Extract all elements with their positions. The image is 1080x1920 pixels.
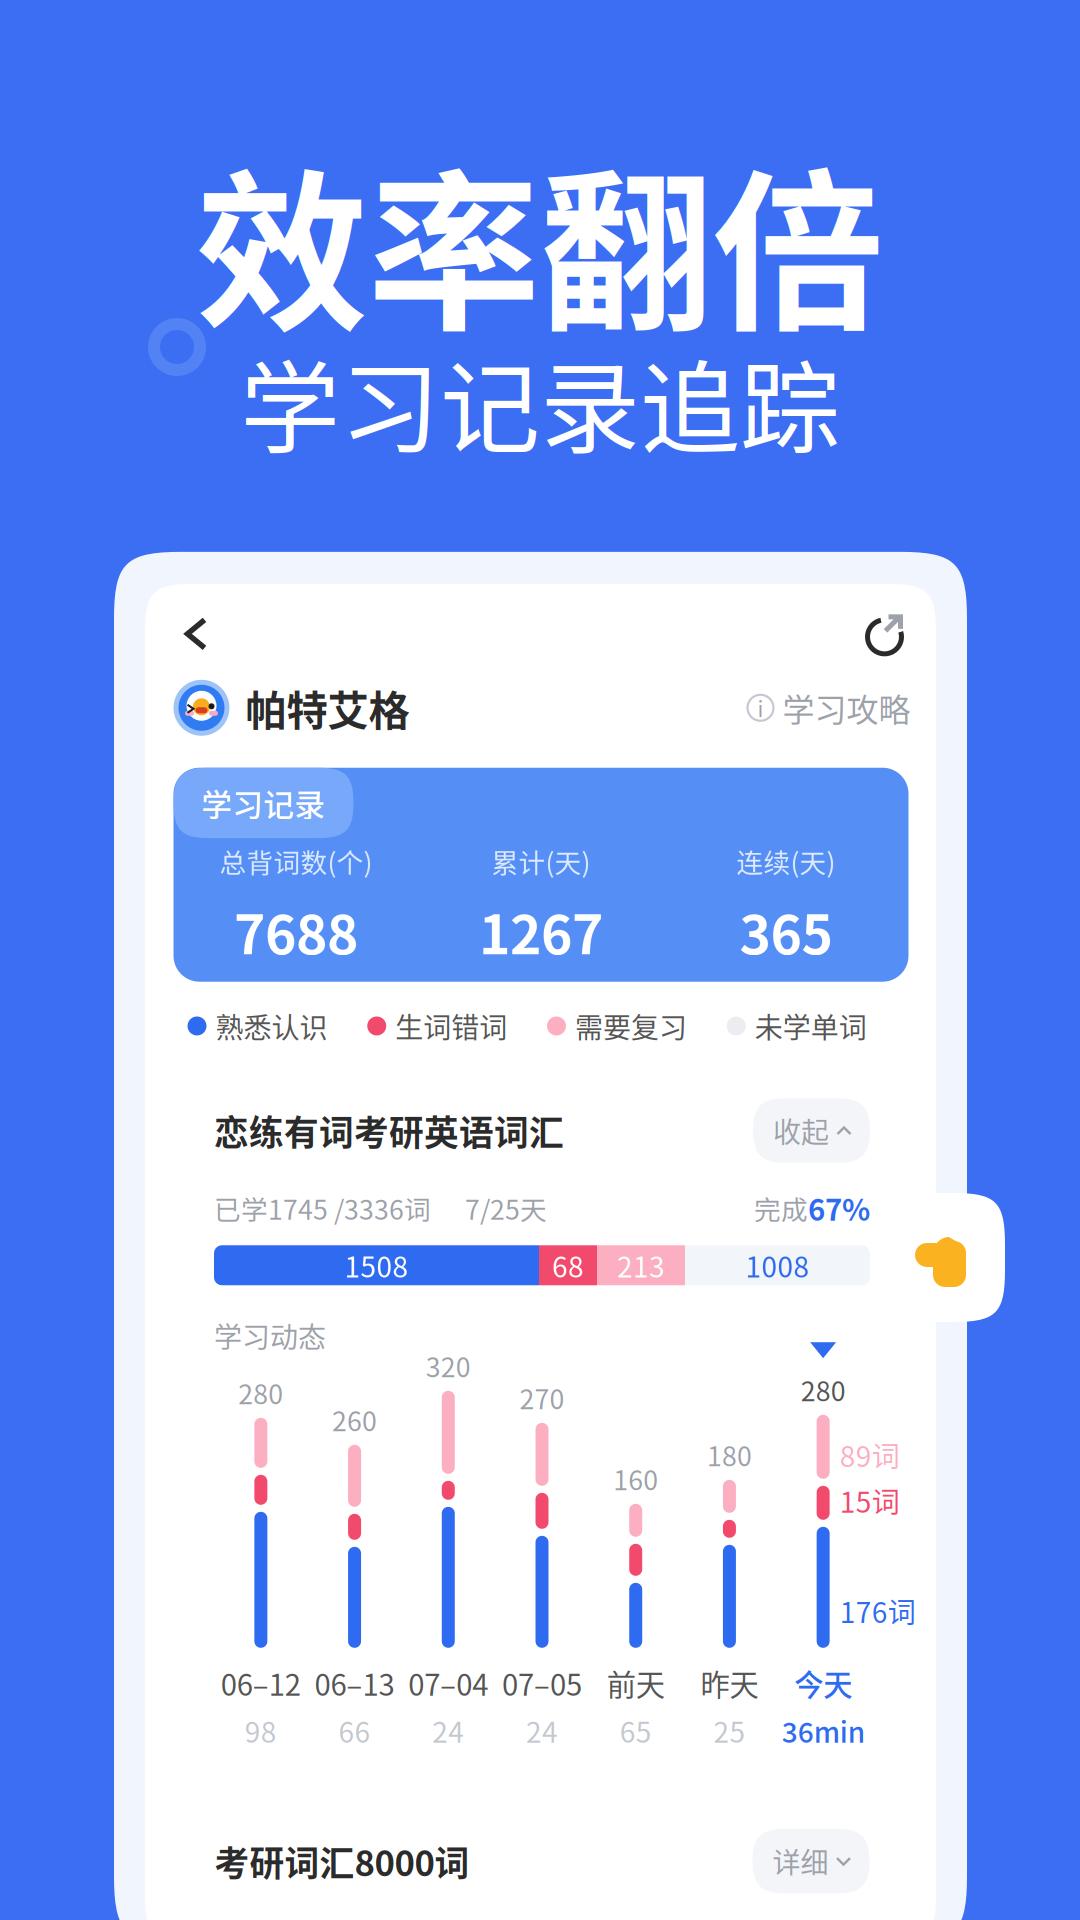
button[interactable]: 收起 — [753, 1098, 870, 1163]
staticText: 160 — [613, 1459, 658, 1498]
button[interactable]: i — [747, 685, 910, 731]
staticText: 260 — [332, 1400, 377, 1439]
staticText: 1508 — [344, 1245, 408, 1285]
staticText: 66 — [339, 1710, 371, 1751]
staticText: 连续(天) — [736, 842, 835, 880]
staticText: 已学1745 /3336词 — [214, 1189, 431, 1227]
staticText: 65 — [620, 1710, 652, 1751]
staticText: 176词 — [840, 1590, 916, 1631]
staticText: 7/25天 — [465, 1189, 547, 1227]
staticText: 270 — [519, 1378, 564, 1417]
staticText: 帕特艾格 — [245, 678, 409, 738]
staticText: 280 — [801, 1370, 846, 1409]
staticText: 280 — [238, 1373, 283, 1412]
staticText: 未学单词 — [755, 1006, 867, 1046]
staticText: 36min — [782, 1710, 865, 1751]
staticText: 24 — [432, 1710, 464, 1751]
staticText: 180 — [707, 1435, 752, 1474]
staticText: 98 — [245, 1710, 277, 1751]
staticText: 学习动态 — [214, 1315, 326, 1356]
staticText: 学习记录 — [201, 781, 325, 825]
staticText: i — [757, 692, 763, 723]
staticText: 06–13 — [315, 1662, 395, 1704]
staticText: 学习记录追踪 — [240, 329, 840, 474]
staticText: 昨天 — [700, 1662, 758, 1704]
staticText: 前天 — [607, 1662, 665, 1704]
staticText: 总背词数(个) — [219, 842, 372, 880]
staticText: 15词 — [840, 1480, 900, 1521]
staticText: 7688 — [234, 892, 358, 969]
staticText: 恋练有词考研英语词汇 — [214, 1105, 564, 1156]
button[interactable]: Back — [167, 606, 223, 662]
staticText: 1267 — [479, 892, 603, 969]
staticText: 效率翻倍 — [196, 116, 884, 365]
staticText: 320 — [426, 1346, 471, 1385]
staticText: 今天 — [794, 1662, 852, 1704]
staticText: 06–12 — [221, 1662, 301, 1704]
staticText: 累计(天) — [491, 842, 590, 880]
staticText: 1008 — [745, 1245, 809, 1285]
staticText: 68 — [552, 1245, 584, 1285]
staticText: 熟悉认识 — [215, 1006, 327, 1046]
staticText: 生词错词 — [395, 1006, 507, 1046]
staticText: 需要复习 — [575, 1006, 687, 1046]
button[interactable]: Tap hint — [877, 1193, 1005, 1322]
staticText: 07–04 — [408, 1662, 488, 1704]
staticText: 89词 — [840, 1434, 900, 1475]
staticText: 详细 — [772, 1841, 828, 1881]
staticText: 365 — [739, 892, 832, 969]
staticText: 67% — [808, 1187, 870, 1229]
staticText: 07–05 — [502, 1662, 582, 1704]
staticText: 25 — [713, 1710, 745, 1751]
staticText: 收起 — [773, 1110, 829, 1151]
staticText: 考研词汇8000词 — [214, 1836, 469, 1886]
staticText: 完成 — [754, 1189, 808, 1227]
staticText: 24 — [526, 1710, 558, 1751]
button[interactable]: 详细 — [752, 1829, 869, 1893]
staticText: 213 — [617, 1245, 665, 1285]
button[interactable]: Share — [856, 606, 912, 662]
staticText: 学习攻略 — [782, 685, 910, 731]
